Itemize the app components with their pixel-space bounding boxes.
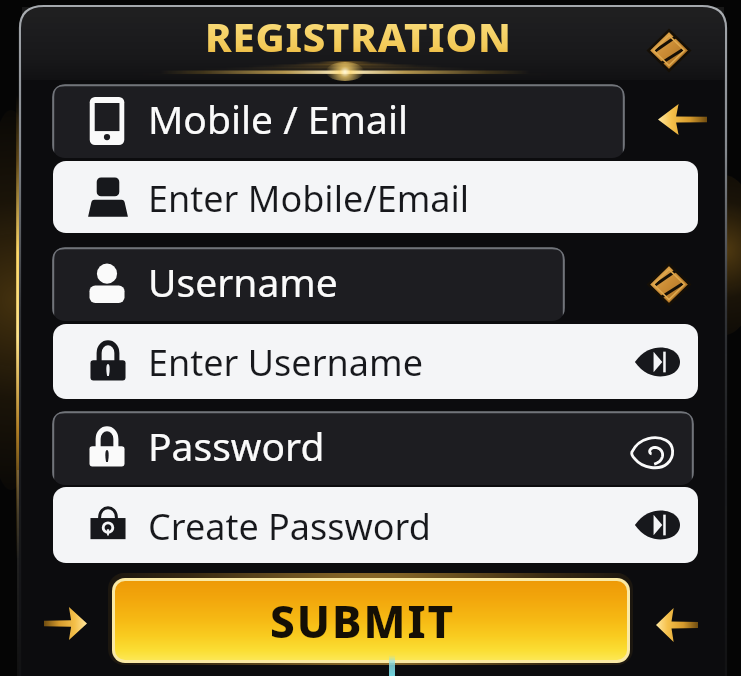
- button[interactable]: Show password: [634, 502, 680, 548]
- button[interactable]: Mobile / Email: [52, 84, 625, 158]
- button[interactable]: Enter Mobile/Email: [53, 161, 698, 233]
- button[interactable]: Back: [658, 104, 707, 135]
- staticText: Enter Mobile/Email: [148, 174, 470, 223]
- button[interactable]: Back: [656, 608, 698, 642]
- button[interactable]: Show password: [630, 425, 676, 471]
- staticText: SUBMIT: [270, 591, 456, 651]
- staticText: REGISTRATION: [205, 9, 512, 63]
- staticText: Mobile / Email: [148, 92, 409, 145]
- button[interactable]: Password: [52, 411, 694, 485]
- staticText: Enter Username: [148, 338, 423, 387]
- staticText: Password: [148, 419, 325, 472]
- button[interactable]: Next: [44, 607, 87, 640]
- button[interactable]: Create Password: [53, 487, 698, 563]
- staticText: Create Password: [148, 502, 431, 551]
- button[interactable]: Show password: [634, 339, 680, 385]
- button[interactable]: Username: [52, 247, 565, 321]
- staticText: Username: [148, 255, 338, 308]
- button[interactable]: SUBMIT: [115, 581, 627, 660]
- button[interactable]: Enter Username: [53, 324, 698, 399]
